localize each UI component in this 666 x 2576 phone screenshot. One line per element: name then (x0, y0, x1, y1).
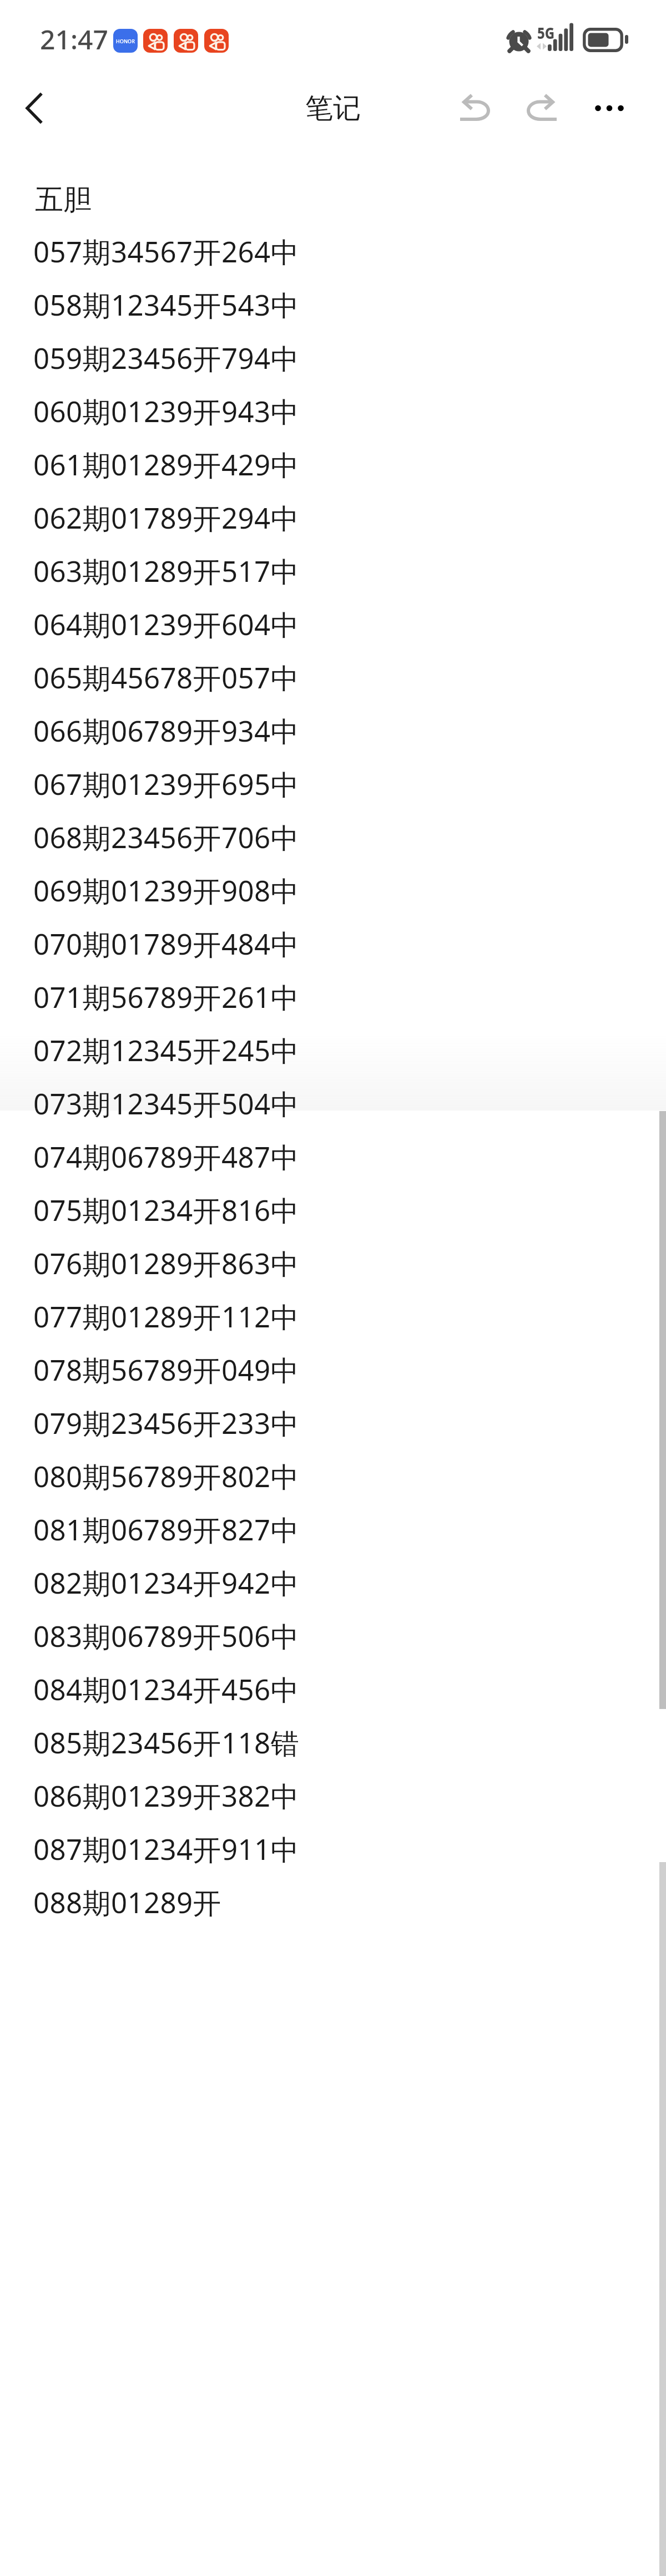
staticText: HONOR (116, 38, 135, 44)
staticText: 069期01239开908中 (33, 871, 299, 910)
staticText: 064期01239开604中 (33, 605, 299, 643)
staticText: 071期56789开261中 (33, 977, 299, 1016)
staticText: 065期45678开057中 (33, 658, 299, 697)
staticText: 084期01234开456中 (33, 1670, 299, 1708)
staticText: 057期34567开264中 (33, 232, 299, 271)
staticText: 082期01234开942中 (33, 1563, 299, 1602)
staticText: 21:47 (40, 21, 108, 57)
staticText: 074期06789开487中 (33, 1137, 299, 1176)
button[interactable]: Back (7, 82, 62, 134)
staticText: 068期23456开706中 (33, 818, 299, 856)
staticText: 072期12345开245中 (33, 1031, 299, 1069)
staticText: 083期06789开506中 (33, 1616, 299, 1655)
staticText: 076期01289开863中 (33, 1244, 299, 1282)
staticText: 059期23456开794中 (33, 338, 299, 377)
staticText: 088期01289开 (33, 1883, 221, 1921)
staticText: 085期23456开118错 (33, 1723, 299, 1762)
staticText: 079期23456开233中 (33, 1403, 299, 1442)
staticText: 062期01789开294中 (33, 498, 299, 537)
staticText: 5G (537, 22, 555, 43)
staticText: 087期01234开911中 (33, 1829, 299, 1868)
button[interactable]: Undo (449, 82, 501, 134)
staticText: 078期56789开049中 (33, 1350, 299, 1389)
staticText: 067期01239开695中 (33, 764, 299, 803)
button[interactable]: More options (586, 82, 638, 134)
staticText: 070期01789开484中 (33, 924, 299, 963)
staticText: 060期01239开943中 (33, 392, 299, 430)
staticText: 077期01289开112中 (33, 1297, 299, 1336)
staticText: 058期12345开543中 (33, 285, 299, 324)
button[interactable]: Redo (516, 82, 568, 134)
staticText: 063期01289开517中 (33, 551, 299, 590)
staticText: 五胆 (35, 182, 92, 217)
staticText: 075期01234开816中 (33, 1190, 299, 1229)
staticText: 笔记 (305, 91, 361, 126)
staticText: 081期06789开827中 (33, 1510, 299, 1549)
staticText: 061期01289开429中 (33, 445, 299, 484)
button[interactable]: 五胆 (0, 134, 666, 2576)
staticText: 086期01239开382中 (33, 1776, 299, 1815)
staticText: 066期06789开934中 (33, 711, 299, 750)
staticText: 080期56789开802中 (33, 1457, 299, 1495)
staticText: 073期12345开504中 (33, 1084, 299, 1123)
